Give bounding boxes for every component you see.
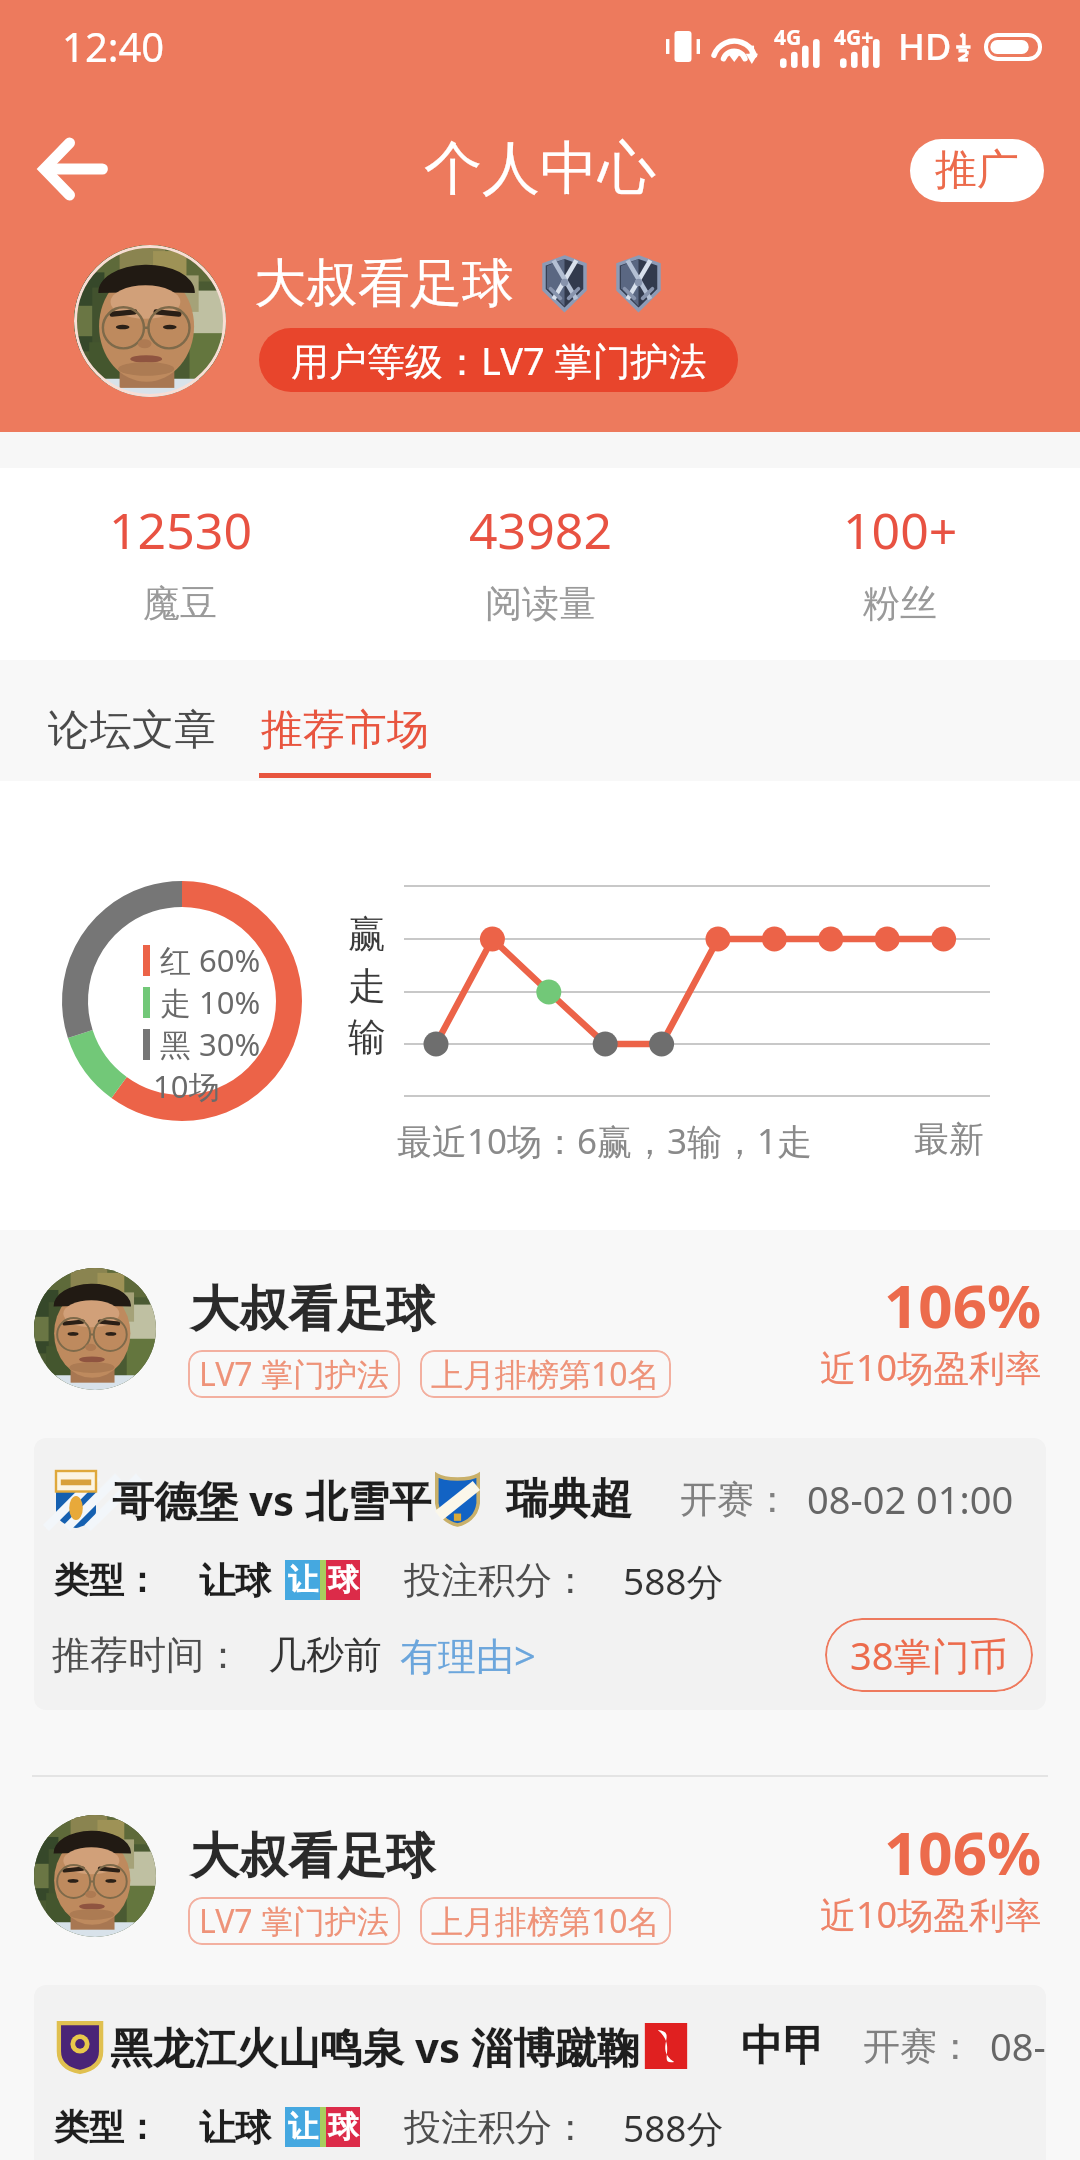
button[interactable]: 上月排榜第10名 xyxy=(420,1350,671,1398)
staticText: 12530 xyxy=(109,496,252,564)
staticText: 球 xyxy=(328,1561,358,1599)
staticText: 大叔看足球 xyxy=(190,1826,435,1888)
staticText: 类型： xyxy=(54,1558,159,1602)
staticText: 哥德堡 vs 北雪平 xyxy=(112,1471,431,1528)
button[interactable]: Profile photo xyxy=(0,1230,1080,1775)
staticText: 10场 xyxy=(153,1065,220,1107)
staticText: 08-01 xyxy=(990,2020,1046,2072)
button[interactable]: LV7 掌门护法 xyxy=(188,1897,400,1945)
button[interactable]: 有理由> xyxy=(400,1629,536,1681)
staticText: 上月排榜第10名 xyxy=(431,1352,660,1396)
staticText: 红 60% xyxy=(160,939,261,981)
staticText: 588分 xyxy=(623,1555,724,1605)
button[interactable]: Profile photo xyxy=(34,1815,156,1937)
staticText: 球 xyxy=(328,2108,358,2146)
staticText: LV7 掌门护法 xyxy=(199,1899,389,1943)
button[interactable]: Profile photo xyxy=(74,245,226,397)
staticText: 黑龙江火山鸣泉 vs 淄博蹴鞠 xyxy=(110,2018,639,2075)
staticText: LV7 掌门护法 xyxy=(199,1352,389,1396)
staticText: 12:40 xyxy=(62,19,165,73)
staticText: HD xyxy=(898,22,952,71)
button[interactable]: 43982 xyxy=(360,468,720,660)
staticText: 投注积分： xyxy=(404,1557,589,1604)
staticText: 赢 xyxy=(348,910,386,958)
staticText: 100+ xyxy=(843,496,958,564)
staticText: 走 xyxy=(348,962,386,1010)
staticText: 43982 xyxy=(469,496,612,564)
button[interactable]: 推荐市场 xyxy=(255,698,435,778)
staticText: 38掌门币 xyxy=(850,1629,1008,1681)
staticText: 中甲 xyxy=(741,2020,825,2073)
button[interactable]: 100+ xyxy=(720,468,1080,660)
button[interactable]: 12530 xyxy=(0,468,360,660)
staticText: 大叔看足球 xyxy=(254,251,514,317)
staticText: 魔豆 xyxy=(143,580,217,627)
staticText: 让球 xyxy=(199,2105,271,2150)
staticText: 大叔看足球 xyxy=(190,1279,435,1341)
button[interactable]: Profile photo xyxy=(34,1268,156,1390)
staticText: 论坛文章 xyxy=(48,704,216,757)
staticText: 近10场盈利率 xyxy=(820,1343,1042,1392)
staticText: 有理由> xyxy=(400,1629,536,1681)
staticText: 106% xyxy=(884,1264,1042,1346)
staticText: 上月排榜第10名 xyxy=(431,1899,660,1943)
staticText: 个人中心 xyxy=(424,132,656,205)
staticText: 瑞典超 xyxy=(506,1473,632,1526)
button[interactable]: Profile photo xyxy=(0,1777,1080,2160)
staticText: 08-02 01:00 xyxy=(807,1473,1014,1525)
staticText: 开赛： xyxy=(680,1476,791,1523)
staticText: 推荐时间： xyxy=(52,1631,242,1679)
staticText: 最近10场：6赢，3输，1走 xyxy=(397,1117,813,1165)
staticText: 最新 xyxy=(914,1117,984,1161)
staticText: 让 xyxy=(288,2108,318,2146)
button[interactable]: LV7 掌门护法 xyxy=(188,1350,400,1398)
staticText: 粉丝 xyxy=(863,580,937,627)
staticText: 4G+ xyxy=(834,23,874,52)
staticText: 投注积分： xyxy=(404,2104,589,2151)
staticText: 输 xyxy=(348,1013,386,1061)
button[interactable]: 用户等级：LV7 掌门护法 xyxy=(259,328,738,392)
button[interactable]: 推广 xyxy=(910,139,1044,202)
button[interactable]: 上月排榜第10名 xyxy=(420,1897,671,1945)
staticText: 用户等级：LV7 掌门护法 xyxy=(291,334,707,386)
staticText: 推荐市场 xyxy=(261,704,429,757)
staticText: 4G xyxy=(774,23,802,52)
button[interactable]: 38掌门币 xyxy=(825,1618,1033,1692)
staticText: 开赛： xyxy=(863,2023,974,2070)
staticText: 588分 xyxy=(623,2102,724,2152)
staticText: 几秒前 xyxy=(268,1631,382,1679)
staticText: 阅读量 xyxy=(485,580,596,627)
staticText: 让球 xyxy=(199,1558,271,1603)
staticText: 黑 30% xyxy=(160,1023,261,1065)
button[interactable]: 论坛文章 xyxy=(42,698,222,763)
staticText: 类型： xyxy=(54,2105,159,2149)
staticText: 走 10% xyxy=(160,981,261,1023)
staticText: 让 xyxy=(288,1561,318,1599)
staticText: 106% xyxy=(884,1811,1042,1893)
staticText: 推广 xyxy=(935,144,1019,197)
button[interactable]: Back xyxy=(18,114,128,224)
staticText: 近10场盈利率 xyxy=(820,1890,1042,1939)
